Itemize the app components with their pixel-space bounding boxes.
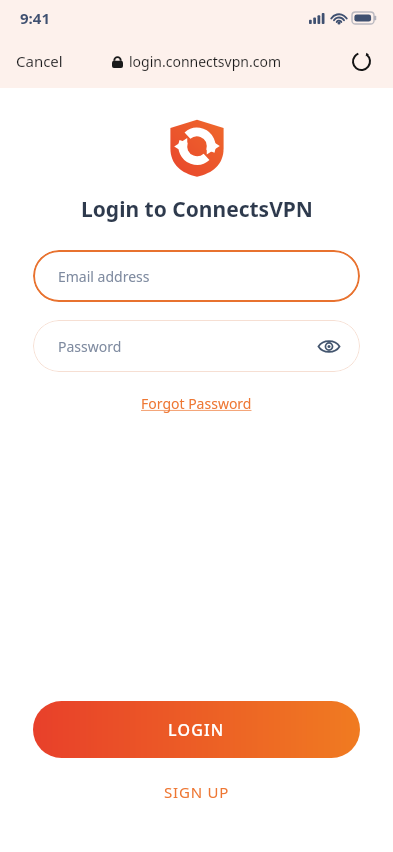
button[interactable]: LOGIN <box>33 701 360 758</box>
staticText: Login to ConnectsVPN <box>81 195 313 224</box>
button[interactable]: Show password <box>310 327 348 365</box>
button[interactable]: SIGN UP <box>150 776 244 808</box>
staticText: SIGN UP <box>164 782 230 802</box>
staticText: 9:41 <box>20 8 50 28</box>
button[interactable]: Cancel <box>0 43 79 79</box>
staticText: Email address <box>58 267 150 286</box>
button[interactable]: Forgot Password <box>131 390 262 417</box>
button[interactable]: Email address <box>33 250 360 302</box>
staticText: LOGIN <box>168 719 225 741</box>
staticText: Password <box>58 337 122 356</box>
staticText: Forgot Password <box>141 394 252 413</box>
staticText: login.connectsvpn.com <box>129 52 281 71</box>
staticText: Cancel <box>16 51 63 71</box>
button[interactable]: Reload <box>341 41 381 81</box>
button[interactable]: Password <box>33 320 360 372</box>
